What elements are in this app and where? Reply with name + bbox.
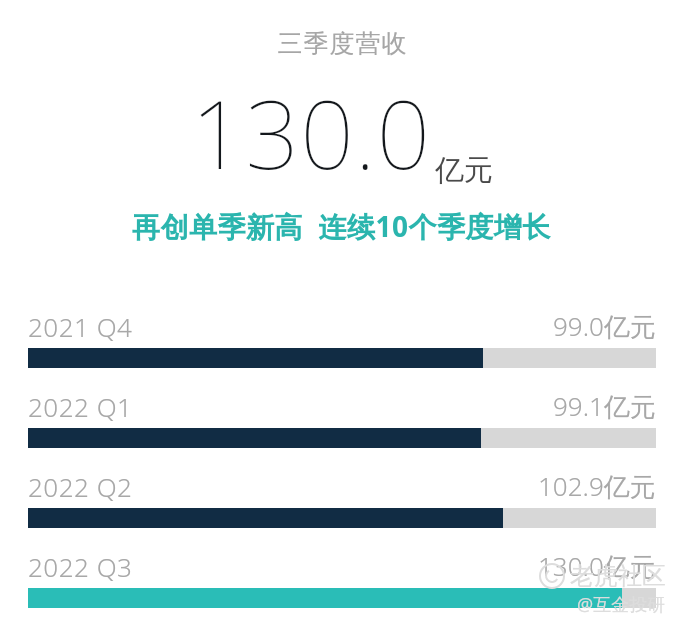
staticText: 2021 Q4 bbox=[28, 309, 133, 344]
button[interactable]: 2022 Q1 bbox=[28, 388, 656, 448]
staticText: 102.9亿元 bbox=[538, 468, 656, 504]
staticText: 三季度营收 bbox=[277, 28, 407, 59]
staticText: 2022 Q3 bbox=[28, 549, 133, 584]
staticText: 亿元 bbox=[435, 152, 493, 189]
staticText: 2022 Q1 bbox=[28, 389, 133, 424]
staticText: 2022 Q2 bbox=[28, 469, 133, 504]
button[interactable]: 2022 Q3 bbox=[28, 548, 656, 608]
staticText: @互金投研 bbox=[577, 592, 666, 617]
staticText: 130.0 bbox=[191, 69, 432, 197]
staticText: 99.0亿元 bbox=[553, 308, 656, 344]
staticText: 老虎社区 bbox=[570, 561, 666, 591]
button[interactable]: 2022 Q2 bbox=[28, 468, 656, 528]
other: 老虎社区 watermark bbox=[539, 561, 666, 617]
staticText: 再创单季新高 连续10个季度增长 bbox=[132, 207, 552, 245]
staticText: 130.0亿元 bbox=[538, 548, 656, 584]
staticText: 99.1亿元 bbox=[553, 388, 656, 424]
button[interactable]: 2021 Q4 bbox=[28, 308, 656, 368]
